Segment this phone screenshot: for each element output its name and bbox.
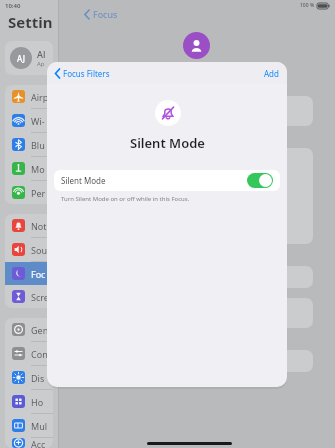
button[interactable]: Focus Filters [55,68,110,79]
staticText: Sounds [31,244,49,256]
staticText: Home Scre [31,396,49,408]
button[interactable]: Airplane M [5,85,53,108]
staticText: Mobile Dat [31,163,49,175]
staticText: Focus Filters [63,68,110,79]
staticText: Notification [31,220,49,232]
staticText: Add [264,68,279,79]
staticText: Accessibilit [31,438,49,448]
button[interactable]: Accessibilit [5,438,53,448]
staticText: Focus [93,8,118,20]
button[interactable]: Home Scre [5,390,53,413]
button[interactable]: Add [264,68,279,79]
staticText: Airplane M [31,91,49,103]
staticText: Control Ce [31,348,49,360]
staticText: Focus [31,268,49,280]
staticText: Screen Tim [31,291,49,303]
staticText: Wi-Fi [31,115,49,127]
staticText: 10:40 [5,2,21,10]
staticText: Settings [8,12,58,32]
staticText: Personal H [31,187,49,199]
staticText: Turn Silent Mode on or off while in this… [61,195,190,203]
staticText: Apple ID [37,60,48,68]
button[interactable]: AJ [5,41,53,75]
staticText: Choose which people you want notificatio… [82,132,223,140]
staticText: Display & B [31,372,49,384]
button[interactable]: Wi-Fi [5,109,53,132]
staticText: Multitaskin [31,420,49,432]
button[interactable]: Personal H [5,181,53,204]
button[interactable]: Focus [84,8,118,20]
button[interactable]: Sounds [5,238,53,261]
button[interactable]: Bluetooth [5,133,53,156]
staticText: General [31,324,49,336]
staticText: Silent Mode [61,175,106,186]
button[interactable]: Silent Mode toggle [247,173,273,188]
staticText: 100 % [300,2,315,9]
staticText: Alan Jones [37,48,48,60]
button[interactable]: Notification [5,214,53,237]
button[interactable]: Multitaskin [5,414,53,437]
button[interactable]: Silent Mode [54,170,280,191]
button[interactable]: Focus [5,262,53,285]
button[interactable]: Screen Tim [5,285,53,308]
button[interactable]: General [5,318,53,341]
button[interactable]: Mobile Dat [5,157,53,180]
staticText: AJ [17,53,25,64]
staticText: Bluetooth [31,139,49,151]
staticText: Silent Mode [130,134,205,152]
button[interactable]: Control Ce [5,342,53,365]
button[interactable]: Display & B [5,366,53,389]
